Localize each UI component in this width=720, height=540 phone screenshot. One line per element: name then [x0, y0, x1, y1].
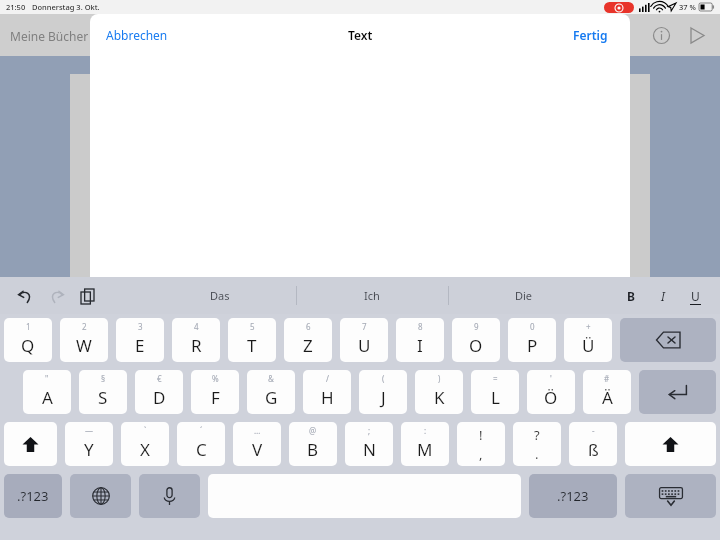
staticText: V: [252, 438, 263, 461]
button[interactable]: &: [247, 370, 295, 414]
button[interactable]: Fertig: [569, 21, 612, 49]
staticText: .?123: [557, 487, 589, 505]
button[interactable]: (: [359, 370, 407, 414]
staticText: G: [265, 386, 278, 409]
staticText: Meine Bücher: [10, 28, 89, 44]
button[interactable]: ;: [345, 422, 393, 466]
button[interactable]: !: [457, 422, 505, 466]
button[interactable]: €: [135, 370, 183, 414]
staticText: 3: [138, 321, 143, 332]
button[interactable]: .?123: [4, 474, 62, 518]
button[interactable]: 9: [452, 318, 500, 362]
staticText: M: [417, 438, 433, 461]
button[interactable]: /: [303, 370, 351, 414]
staticText: …: [254, 425, 261, 436]
staticText: (: [382, 373, 385, 384]
staticText: —: [85, 425, 93, 436]
button[interactable]: Tastatur ausblenden: [625, 474, 716, 518]
button[interactable]: ": [23, 370, 71, 414]
staticText: Abbrechen: [106, 27, 168, 43]
button[interactable]: Ich: [296, 277, 448, 314]
button[interactable]: Die: [448, 277, 600, 314]
button[interactable]: +: [564, 318, 612, 362]
staticText: D: [153, 386, 166, 409]
staticText: Ich: [364, 288, 380, 303]
staticText: Das: [210, 288, 230, 303]
button[interactable]: Redo: [43, 283, 69, 309]
button[interactable]: 3: [116, 318, 164, 362]
staticText: K: [434, 386, 445, 409]
staticText: !: [479, 426, 483, 444]
staticText: 0: [530, 321, 535, 332]
button[interactable]: Zeilenumbruch: [639, 370, 716, 414]
button[interactable]: ': [527, 370, 575, 414]
button[interactable]: Undo: [12, 283, 38, 309]
staticText: ´: [200, 425, 203, 436]
button[interactable]: Meine Bücher: [10, 28, 89, 44]
staticText: Ö: [544, 386, 558, 409]
staticText: N: [363, 438, 376, 461]
staticText: A: [42, 386, 53, 409]
button[interactable]: .?123: [529, 474, 617, 518]
staticText: €: [157, 373, 162, 384]
button[interactable]: ?: [513, 422, 561, 466]
button[interactable]: Diktieren: [139, 474, 200, 518]
button[interactable]: ´: [177, 422, 225, 466]
staticText: T: [247, 334, 257, 357]
button[interactable]: @: [289, 422, 337, 466]
button[interactable]: —: [65, 422, 113, 466]
button[interactable]: #: [583, 370, 631, 414]
button[interactable]: 1: [4, 318, 52, 362]
button[interactable]: Das: [144, 277, 296, 314]
button[interactable]: -: [569, 422, 617, 466]
button[interactable]: 8: [396, 318, 444, 362]
button[interactable]: Umschalt: [625, 422, 716, 466]
staticText: L: [491, 386, 500, 409]
button[interactable]: 4: [172, 318, 220, 362]
button[interactable]: Abspielen: [682, 20, 712, 50]
button[interactable]: =: [471, 370, 519, 414]
button[interactable]: 7: [340, 318, 388, 362]
button[interactable]: Information: [646, 20, 676, 50]
button[interactable]: :: [401, 422, 449, 466]
staticText: Donnerstag 3. Okt.: [32, 2, 100, 12]
staticText: E: [135, 334, 145, 357]
staticText: 37 %: [679, 2, 696, 12]
button[interactable]: 2: [60, 318, 108, 362]
button[interactable]: …: [233, 422, 281, 466]
button[interactable]: I: [654, 284, 672, 308]
button[interactable]: `: [121, 422, 169, 466]
staticText: ": [45, 373, 49, 384]
staticText: 2: [82, 321, 87, 332]
button[interactable]: %: [191, 370, 239, 414]
staticText: R: [191, 334, 202, 357]
button[interactable]: Löschen: [620, 318, 716, 362]
staticText: ;: [368, 425, 371, 436]
staticText: %: [212, 373, 219, 384]
staticText: -: [592, 425, 595, 436]
staticText: ß: [588, 438, 599, 461]
staticText: 8: [418, 321, 423, 332]
staticText: O: [469, 334, 483, 357]
staticText: Die: [515, 288, 533, 303]
button[interactable]: U: [686, 284, 704, 308]
button[interactable]: ): [415, 370, 463, 414]
button[interactable]: Abbrechen: [102, 21, 172, 49]
button[interactable]: §: [79, 370, 127, 414]
staticText: 5: [250, 321, 255, 332]
staticText: ): [438, 373, 441, 384]
button[interactable]: 5: [228, 318, 276, 362]
button[interactable]: 6: [284, 318, 332, 362]
button[interactable]: B: [622, 284, 640, 308]
button[interactable]: Sprache wechseln: [70, 474, 131, 518]
staticText: B: [627, 288, 635, 304]
button[interactable]: Umschalt: [4, 422, 57, 466]
staticText: ,: [479, 445, 483, 463]
staticText: Fertig: [573, 27, 608, 43]
staticText: J: [381, 386, 386, 409]
staticText: I: [661, 288, 665, 304]
button[interactable]: 0: [508, 318, 556, 362]
staticText: +: [586, 321, 591, 332]
button[interactable]: Einfügen: [74, 283, 100, 309]
